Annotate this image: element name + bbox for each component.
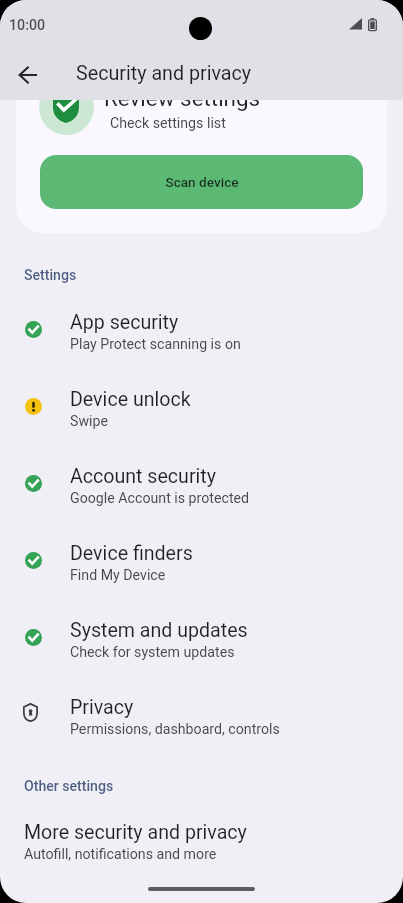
staticText: Find My Device bbox=[70, 567, 166, 584]
button[interactable]: More security and privacy bbox=[0, 808, 403, 876]
staticText: App security bbox=[70, 311, 179, 334]
staticText: Review settings bbox=[104, 85, 261, 111]
staticText: Other settings bbox=[24, 778, 114, 795]
staticText: More security and privacy bbox=[24, 821, 247, 844]
staticText: Check settings list bbox=[110, 115, 226, 132]
staticText: Swipe bbox=[70, 413, 109, 430]
button[interactable]: Scan device bbox=[40, 155, 363, 209]
staticText: Account security bbox=[70, 465, 217, 488]
button[interactable]: System and updates bbox=[0, 611, 403, 688]
staticText: Autofill, notifications and more bbox=[24, 846, 217, 863]
staticText: Check for system updates bbox=[70, 644, 235, 661]
button[interactable]: Review settings bbox=[16, 60, 387, 233]
staticText: System and updates bbox=[70, 619, 248, 642]
button[interactable]: Device unlock bbox=[0, 380, 403, 457]
staticText: Privacy bbox=[70, 696, 134, 719]
button[interactable]: Privacy bbox=[0, 688, 403, 765]
staticText: Play Protect scanning is on bbox=[70, 336, 241, 353]
staticText: Google Account is protected bbox=[70, 490, 250, 507]
staticText: Device finders bbox=[70, 542, 193, 565]
staticText: Security and privacy bbox=[76, 62, 252, 85]
staticText: Scan device bbox=[165, 174, 239, 190]
staticText: 10:00 bbox=[9, 17, 46, 34]
staticText: Device unlock bbox=[70, 388, 191, 411]
button[interactable]: Account security bbox=[0, 457, 403, 534]
button[interactable]: Back bbox=[7, 54, 48, 95]
button[interactable]: Device finders bbox=[0, 534, 403, 611]
staticText: Permissions, dashboard, controls bbox=[70, 721, 280, 738]
staticText: Settings bbox=[24, 267, 77, 284]
button[interactable]: App security bbox=[0, 303, 403, 380]
